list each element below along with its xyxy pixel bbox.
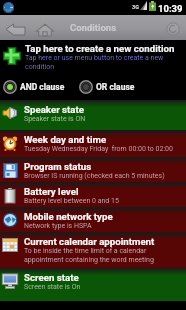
staticText: Tap here or use menu button to create a … xyxy=(25,54,173,71)
staticText: Week day and time xyxy=(24,134,107,145)
button[interactable]: AND clause xyxy=(3,73,65,100)
button[interactable]: Speaker state xyxy=(0,100,186,130)
staticText: Speaker state is ON xyxy=(24,115,186,123)
button[interactable]: Tap here to create a new condition xyxy=(0,40,186,73)
staticText: Screen state xyxy=(24,272,79,283)
staticText: OR clause xyxy=(96,82,135,92)
button[interactable]: Week day and time xyxy=(0,130,186,157)
button[interactable]: Mobile network type xyxy=(0,207,186,232)
staticText: Browser IS running (checked each 5 minut… xyxy=(24,172,186,180)
button[interactable]: OR clause xyxy=(79,73,135,100)
button[interactable]: Screen state xyxy=(0,268,186,301)
button[interactable]: Back xyxy=(0,15,30,40)
button[interactable]: Battery level xyxy=(0,182,186,207)
staticText: Screen state is On xyxy=(24,283,186,291)
staticText: Tuesday Wednesday Friday from 00:00 to 0… xyxy=(24,145,186,153)
staticText: Network type is HSPA xyxy=(24,222,186,230)
button[interactable]: Current calendar appointment xyxy=(0,232,186,268)
staticText: Conditions xyxy=(70,22,117,33)
button[interactable]: Program status xyxy=(0,157,186,182)
staticText: Speaker state xyxy=(24,104,85,115)
staticText: To be inside the time limit of a calenda… xyxy=(24,247,186,264)
staticText: 10:39 xyxy=(158,3,183,14)
staticText: Tap here to create a new condition xyxy=(25,43,175,54)
staticText: Current calendar appointment xyxy=(24,236,155,247)
staticText: Program status xyxy=(24,161,92,172)
button[interactable]: Refresh xyxy=(160,15,186,40)
staticText: Battery level xyxy=(24,186,79,197)
button[interactable]: Home xyxy=(30,15,60,40)
staticText: Mobile network type xyxy=(24,211,113,222)
staticText: AND clause xyxy=(20,82,65,92)
staticText: Battery level between 0 and 15 xyxy=(24,197,186,205)
staticText: 3G xyxy=(132,4,139,10)
